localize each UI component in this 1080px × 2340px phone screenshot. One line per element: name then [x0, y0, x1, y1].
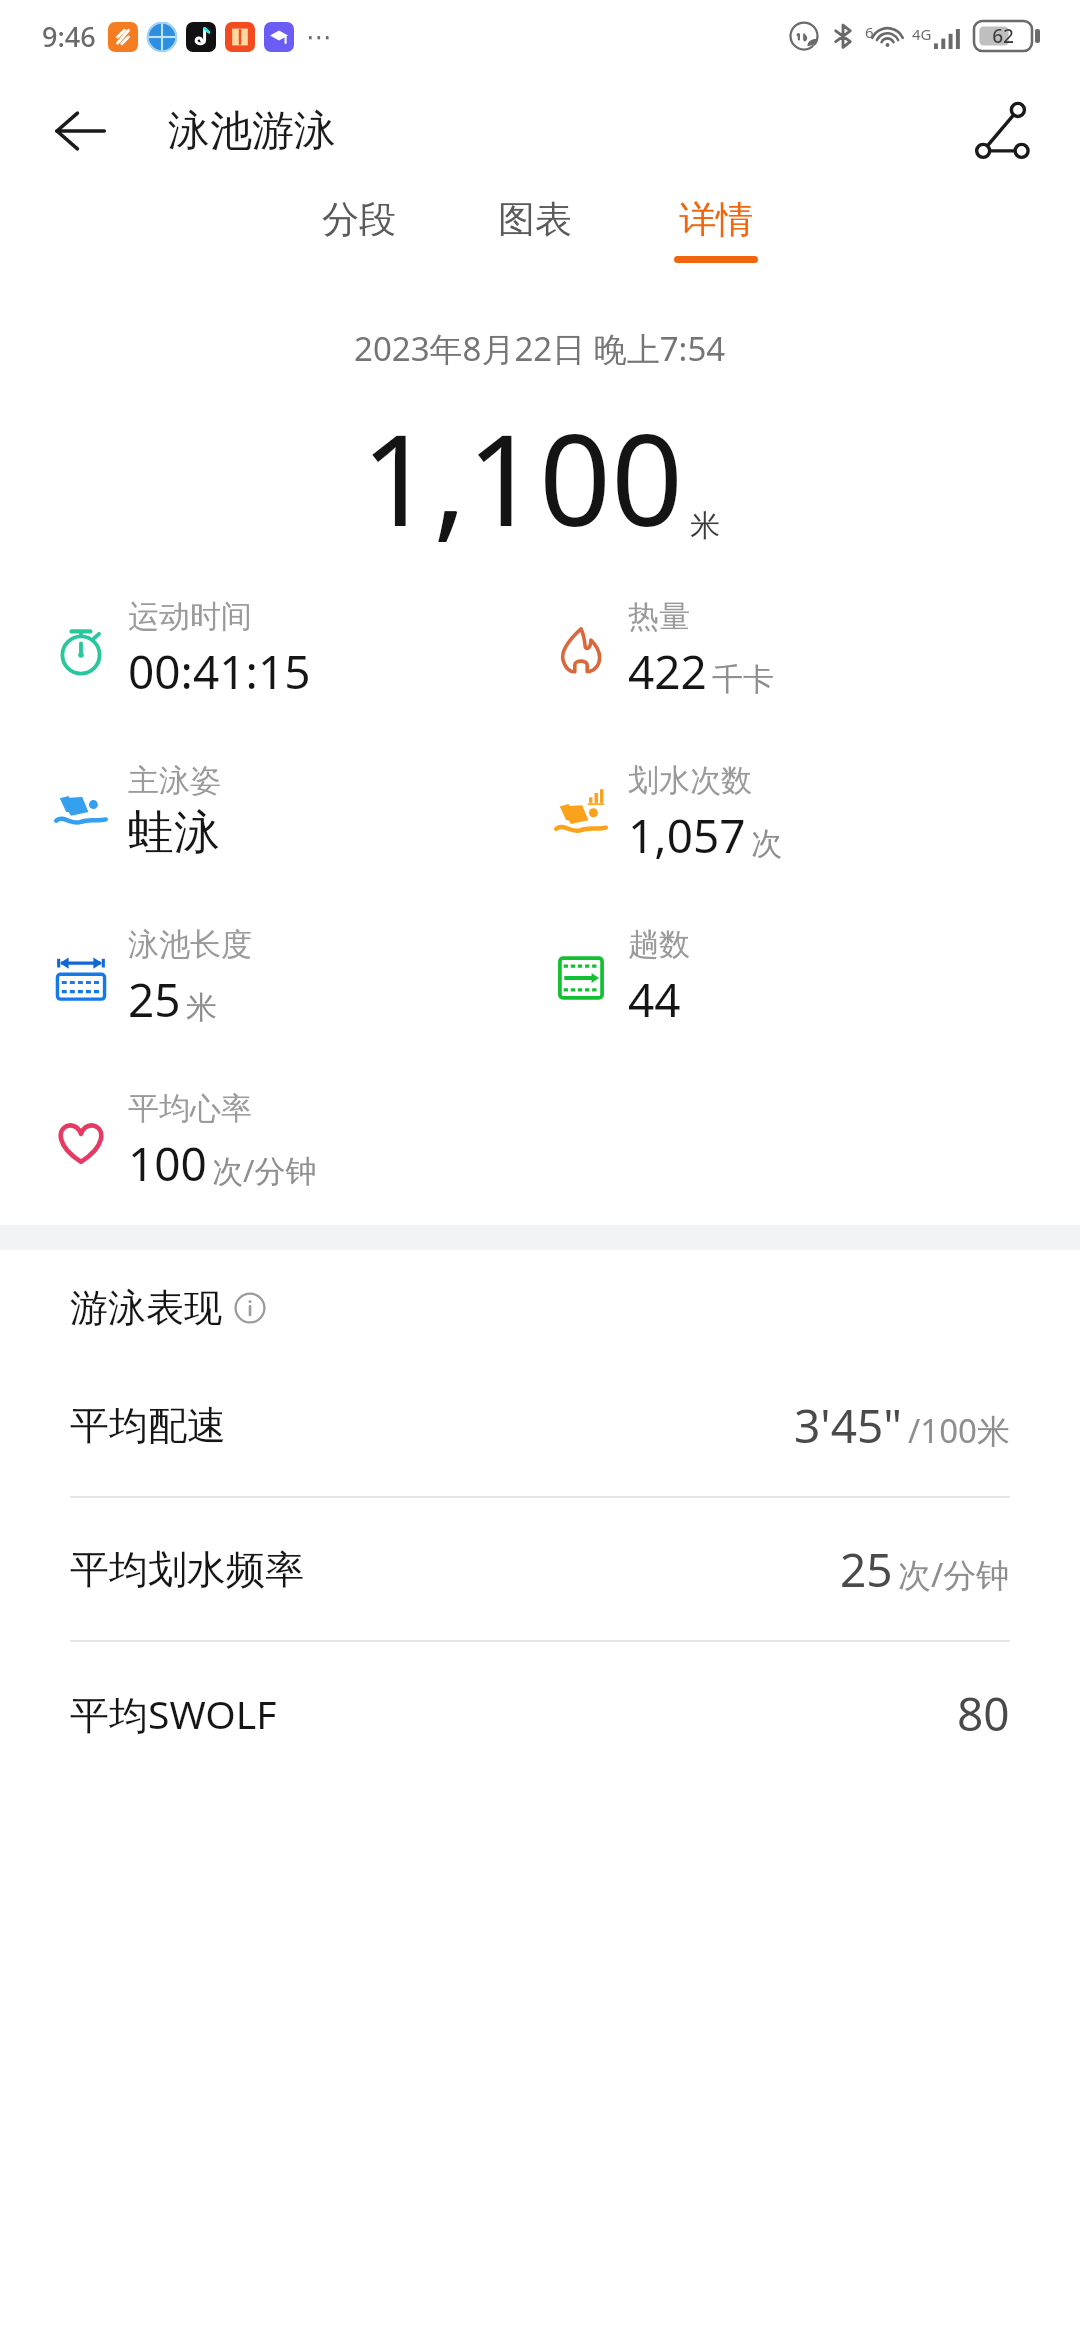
staticText: 100 — [128, 1132, 207, 1195]
staticText: 4G — [912, 24, 932, 44]
button[interactable]: Share — [972, 100, 1034, 162]
staticText: 运动时间 — [128, 597, 252, 636]
staticText: 422 — [628, 640, 707, 703]
button[interactable]: Back — [48, 99, 112, 163]
staticText: 00:41:15 — [128, 640, 311, 703]
button[interactable]: 分段 — [312, 190, 406, 262]
button[interactable]: 主泳姿 — [50, 761, 221, 862]
staticText: 1,057 — [628, 804, 746, 867]
staticText: 米 — [186, 988, 217, 1027]
staticText: 米 — [690, 507, 720, 545]
staticText: 千卡 — [712, 660, 774, 699]
staticText: 热量 — [628, 597, 690, 636]
staticText: ⋯ — [306, 22, 332, 52]
staticText: 25 — [840, 1538, 893, 1601]
staticText: 62 — [992, 23, 1014, 49]
staticText: 1,100 — [361, 391, 684, 563]
staticText: 次/分钟 — [212, 1149, 317, 1191]
staticText: 次 — [751, 824, 782, 863]
button[interactable]: 游泳表现 — [70, 1284, 1080, 1332]
staticText: 详情 — [679, 196, 753, 243]
staticText: 泳池游泳 — [168, 105, 336, 158]
button[interactable]: 运动时间 — [50, 597, 311, 703]
staticText: 9:46 — [42, 18, 96, 55]
staticText: 2023年8月22日 晚上7:54 — [354, 326, 726, 371]
button[interactable]: 热量 — [550, 597, 774, 703]
staticText: 44 — [628, 968, 681, 1031]
button[interactable]: 平均配速 — [0, 1354, 1080, 1496]
button[interactable]: 泳池长度 — [50, 925, 252, 1031]
staticText: 泳池长度 — [128, 925, 252, 964]
button[interactable]: 图表 — [488, 190, 582, 262]
staticText: 平均划水频率 — [70, 1545, 304, 1594]
staticText: 25 — [128, 968, 181, 1031]
staticText: 3'45" — [794, 1394, 903, 1457]
button[interactable]: 平均心率 — [50, 1089, 317, 1195]
staticText: 次/分钟 — [898, 1552, 1010, 1597]
other: Info — [234, 1292, 266, 1324]
staticText: /100米 — [908, 1408, 1010, 1453]
button[interactable]: 划水次数 — [550, 761, 782, 867]
staticText: 主泳姿 — [128, 761, 221, 800]
staticText: 分段 — [322, 196, 396, 243]
staticText: 平均SWOLF — [70, 1687, 277, 1740]
staticText: 划水次数 — [628, 761, 752, 800]
staticText: 趟数 — [628, 925, 690, 964]
staticText: 80 — [957, 1682, 1010, 1745]
button[interactable]: 平均SWOLF — [0, 1642, 1080, 1784]
button[interactable]: 趟数 — [550, 925, 690, 1031]
staticText: 游泳表现 — [70, 1284, 222, 1332]
staticText: 6 — [865, 22, 874, 42]
button[interactable]: 平均划水频率 — [0, 1498, 1080, 1640]
staticText: 蛙泳 — [128, 804, 220, 862]
staticText: 平均心率 — [128, 1089, 252, 1128]
button[interactable]: 详情 — [664, 190, 768, 269]
staticText: 平均配速 — [70, 1401, 226, 1450]
staticText: 图表 — [498, 196, 572, 243]
